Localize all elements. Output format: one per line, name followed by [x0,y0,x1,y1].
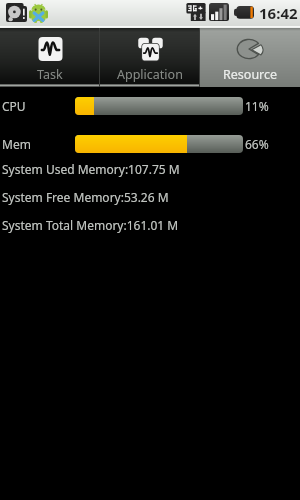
button[interactable]: Resource [200,28,300,87]
staticText: Application [117,66,183,83]
staticText: System Used Memory:107.75 M [2,161,180,177]
staticText: 11% [245,98,269,114]
staticText: System Total Memory:161.01 M [2,217,179,233]
staticText: 16:42 [259,3,298,23]
staticText: CPU [2,98,75,114]
staticText: Resource [223,66,278,83]
button[interactable]: Application [100,28,200,87]
staticText: Mem [2,136,75,152]
staticText: System Free Memory:53.26 M [2,189,169,205]
button[interactable]: Task [0,28,100,87]
staticText: 66% [245,136,269,152]
staticText: Task [37,66,63,83]
